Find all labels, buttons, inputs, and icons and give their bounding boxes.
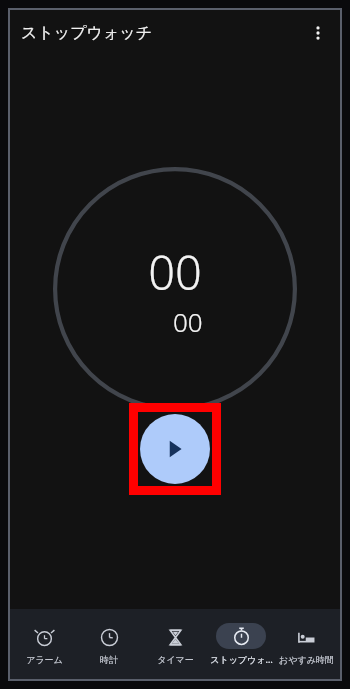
staticText: おやすみ時間	[279, 654, 334, 665]
button[interactable]: 開始	[140, 414, 210, 484]
button[interactable]: 時計	[77, 624, 141, 665]
staticText: 00	[173, 304, 203, 339]
button[interactable]: アラーム	[12, 624, 76, 665]
staticText: タイマー	[157, 654, 194, 665]
staticText: アラーム	[26, 654, 63, 665]
button[interactable]: タイマー	[143, 624, 207, 665]
button[interactable]: その他のオプション	[300, 15, 336, 51]
staticText: 00	[148, 240, 202, 304]
staticText: 時計	[100, 654, 118, 665]
button[interactable]: おやすみ時間	[274, 624, 338, 665]
button[interactable]: ストップウォ…	[209, 623, 273, 665]
staticText: ストップウォッチ	[21, 23, 152, 43]
staticText: ストップウォ…	[210, 653, 273, 665]
